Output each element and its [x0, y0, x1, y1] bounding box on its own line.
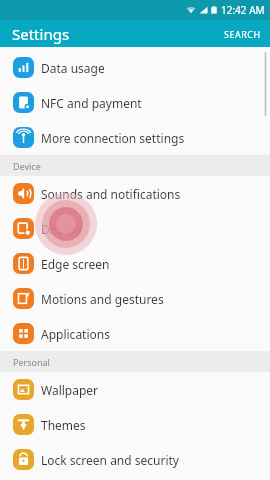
- staticText: More connection settings: [41, 130, 185, 146]
- staticText: 12:42 AM: [221, 3, 265, 17]
- other: NFC and payment: [13, 92, 34, 113]
- other: Applications: [13, 323, 34, 344]
- button[interactable]: SEARCH: [215, 23, 270, 45]
- staticText: NFC and payment: [41, 95, 142, 111]
- staticText: Themes: [41, 417, 86, 433]
- button[interactable]: Sounds and notifications: [0, 176, 270, 211]
- staticText: Sounds and notifications: [41, 186, 181, 202]
- other: More connection settings: [13, 127, 34, 148]
- staticText: Settings: [12, 24, 70, 44]
- button[interactable]: Applications: [0, 316, 270, 351]
- button[interactable]: Lock screen and security: [0, 442, 270, 477]
- other: Lock screen and security: [13, 449, 34, 470]
- other: Motions and gestures: [13, 288, 34, 309]
- button[interactable]: Motions and gestures: [0, 281, 270, 316]
- button[interactable]: Display: [0, 211, 270, 246]
- other: Display: [13, 218, 34, 239]
- button[interactable]: More connection settings: [0, 120, 270, 155]
- staticText: Display: [41, 221, 82, 237]
- button[interactable]: NFC and payment: [0, 85, 270, 120]
- other: Data usage: [13, 57, 34, 78]
- staticText: Edge screen: [41, 256, 110, 272]
- other: Wallpaper: [13, 379, 34, 400]
- button[interactable]: Edge screen: [0, 246, 270, 281]
- staticText: Motions and gestures: [41, 291, 164, 307]
- other: Themes: [13, 414, 34, 435]
- staticText: SEARCH: [224, 28, 261, 40]
- button[interactable]: Wallpaper: [0, 372, 270, 407]
- staticText: Device: [13, 160, 41, 172]
- button[interactable]: Themes: [0, 407, 270, 442]
- other: Edge screen: [13, 253, 34, 274]
- staticText: Wallpaper: [41, 382, 99, 398]
- other: Sounds and notifications: [13, 183, 34, 204]
- staticText: Applications: [41, 326, 110, 342]
- button[interactable]: Data usage: [0, 50, 270, 85]
- staticText: Data usage: [41, 60, 105, 76]
- staticText: Personal: [13, 356, 50, 368]
- staticText: Lock screen and security: [41, 452, 179, 468]
